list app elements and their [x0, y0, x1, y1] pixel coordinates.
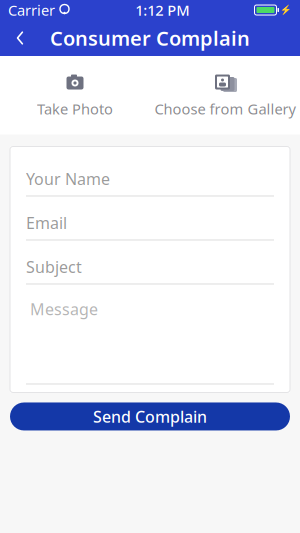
staticText: ⚡: [280, 5, 292, 15]
staticText: Consumer Complain: [50, 25, 250, 51]
staticText: Your Name: [26, 168, 110, 189]
staticText: Take Photo: [37, 99, 113, 118]
button[interactable]: Take Photo: [0, 74, 150, 118]
staticText: Email: [26, 212, 67, 233]
staticText: Subject: [26, 256, 82, 277]
staticText: Choose from Gallery: [154, 99, 295, 118]
button[interactable]: Back: [0, 20, 40, 56]
button[interactable]: Choose from Gallery: [150, 74, 300, 118]
staticText: 1:12 PM: [135, 0, 189, 20]
staticText: Message: [30, 298, 98, 320]
staticText: Carrier: [8, 0, 55, 20]
staticText: Send Complain: [93, 406, 207, 427]
button[interactable]: Send Complain: [10, 402, 290, 430]
